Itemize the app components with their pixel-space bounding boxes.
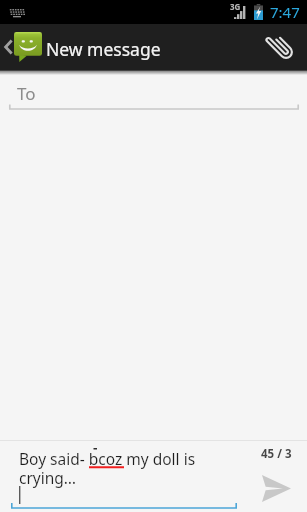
- staticText: 7:47: [270, 2, 300, 22]
- staticText: 45 / 3: [261, 446, 292, 462]
- button[interactable]: Attach file: [261, 24, 307, 70]
- staticText: New message: [46, 37, 161, 61]
- staticText: 3G: [230, 1, 241, 12]
- button[interactable]: Navigate up: [0, 24, 307, 70]
- button[interactable]: To: [0, 74, 307, 116]
- button[interactable]: Boy said- bcoz my doll is crying…: [0, 441, 238, 512]
- button[interactable]: Send message: [238, 441, 307, 512]
- staticText: Boy said- bcoz my doll is crying…: [19, 448, 224, 488]
- other: Navigate up: [4, 38, 13, 56]
- staticText: To: [17, 82, 36, 105]
